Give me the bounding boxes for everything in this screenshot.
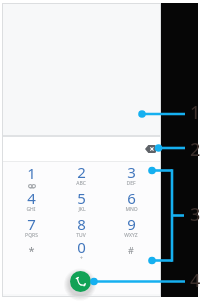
staticText: 9 xyxy=(127,214,136,234)
staticText: 2 xyxy=(77,162,86,182)
button[interactable]: 5 xyxy=(57,188,105,214)
staticText: 2 xyxy=(190,137,201,162)
staticText: 1 xyxy=(27,163,36,183)
staticText: DEF xyxy=(126,180,136,186)
staticText: GHI xyxy=(26,206,36,212)
button[interactable]: Backspace xyxy=(140,141,160,157)
staticText: JKL xyxy=(78,206,86,212)
button[interactable]: 4 xyxy=(7,188,55,214)
button[interactable]: 7 xyxy=(7,214,55,240)
staticText: 7 xyxy=(27,214,36,234)
button[interactable]: 1 xyxy=(7,162,55,188)
button[interactable]: 9 xyxy=(107,214,155,240)
staticText: PQRS xyxy=(25,232,38,238)
staticText: 1 xyxy=(190,100,201,125)
staticText: ABC xyxy=(76,180,86,186)
staticText: + xyxy=(80,255,83,261)
staticText: 8 xyxy=(77,214,86,234)
staticText: 4 xyxy=(190,268,201,293)
button[interactable]: 6 xyxy=(107,188,155,214)
staticText: * xyxy=(28,243,35,258)
staticText: # xyxy=(128,244,134,256)
staticText: 0 xyxy=(77,237,86,257)
staticText: 3 xyxy=(127,162,136,182)
button[interactable]: Call xyxy=(66,267,94,295)
button[interactable]: 3 xyxy=(107,162,155,188)
staticText: WXYZ xyxy=(124,232,138,238)
staticText: 5 xyxy=(77,188,86,208)
button[interactable]: 8 xyxy=(57,214,105,240)
button[interactable]: # xyxy=(107,237,155,263)
staticText: 4 xyxy=(27,188,36,208)
staticText: MNO xyxy=(125,206,138,212)
staticText: 3 xyxy=(190,202,201,227)
staticText: 6 xyxy=(127,188,136,208)
staticText: TUV xyxy=(76,232,86,238)
button[interactable]: 2 xyxy=(57,162,105,188)
button[interactable]: 0 xyxy=(57,237,105,263)
button[interactable]: * xyxy=(7,237,55,263)
